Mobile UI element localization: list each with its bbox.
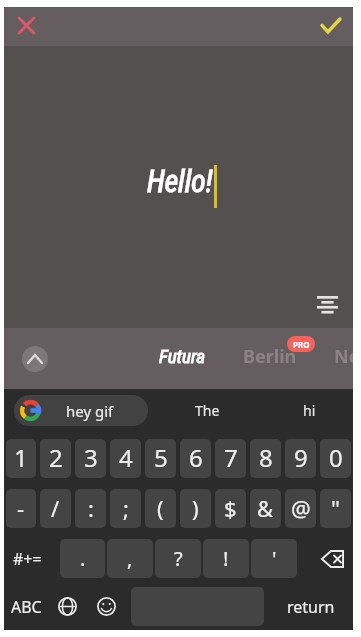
button[interactable]: Backspace — [298, 539, 353, 578]
staticText: ) — [192, 493, 199, 523]
button[interactable]: & — [250, 489, 281, 528]
button[interactable]: ' — [251, 539, 297, 578]
button[interactable]: 1 — [6, 439, 36, 478]
button[interactable]: ABC — [4, 587, 49, 626]
staticText: The — [195, 401, 220, 420]
staticText: 3 — [84, 441, 98, 474]
staticText: 6 — [189, 441, 203, 474]
button[interactable]: 0 — [320, 439, 351, 478]
staticText: ( — [157, 493, 164, 523]
staticText: ' — [272, 545, 277, 572]
staticText: . — [80, 545, 86, 572]
button[interactable]: Text alignment — [311, 288, 343, 320]
button[interactable]: 6 — [180, 439, 211, 478]
button[interactable]: 2 — [40, 439, 71, 478]
button[interactable]: Berlin — [243, 344, 297, 369]
button[interactable]: Google — [14, 395, 148, 426]
button[interactable]: - — [6, 489, 36, 528]
button[interactable]: Futura — [159, 345, 205, 367]
staticText: $ — [224, 493, 237, 523]
button[interactable]: 3 — [75, 439, 106, 478]
staticText: : — [88, 493, 94, 523]
button[interactable]: hi — [303, 401, 316, 420]
staticText: 9 — [294, 441, 308, 474]
staticText: " — [331, 493, 340, 523]
staticText: & — [257, 493, 274, 523]
button[interactable]: #+= — [4, 539, 59, 578]
button[interactable]: 7 — [215, 439, 246, 478]
staticText: return — [287, 596, 335, 618]
staticText: 7 — [224, 441, 238, 474]
staticText: hey gif — [66, 401, 114, 421]
button[interactable]: . — [60, 539, 105, 578]
button[interactable]: Emoji — [85, 587, 127, 626]
staticText: 8 — [259, 441, 273, 474]
button[interactable]: @ — [285, 489, 316, 528]
button[interactable]: 4 — [110, 439, 141, 478]
button[interactable]: Close — [8, 7, 44, 43]
button[interactable]: ! — [203, 539, 249, 578]
staticText: ? — [174, 545, 183, 572]
button[interactable]: 8 — [250, 439, 281, 478]
staticText: ABC — [11, 596, 42, 618]
button[interactable]: Collapse font list — [22, 346, 48, 372]
staticText: 2 — [49, 441, 63, 474]
staticText: 4 — [119, 441, 133, 474]
staticText: ! — [223, 545, 229, 572]
button[interactable]: ? — [155, 539, 201, 578]
staticText: Hello! — [147, 162, 213, 200]
button[interactable]: 5 — [145, 439, 176, 478]
staticText: 5 — [154, 441, 168, 474]
button[interactable]: , — [107, 539, 153, 578]
staticText: / — [51, 493, 60, 523]
staticText: @ — [291, 493, 311, 523]
button[interactable]: 9 — [285, 439, 316, 478]
button[interactable]: : — [75, 489, 106, 528]
staticText: 1 — [14, 441, 28, 474]
button[interactable]: / — [40, 489, 71, 528]
button[interactable]: Change language — [49, 587, 85, 626]
button[interactable]: The — [195, 401, 220, 420]
button[interactable]: " — [320, 489, 351, 528]
staticText: ; — [123, 493, 129, 523]
staticText: , — [127, 545, 133, 572]
staticText: PRO — [293, 339, 310, 350]
button[interactable]: return — [269, 587, 353, 626]
button[interactable]: Done — [313, 7, 349, 43]
button[interactable]: ( — [145, 489, 176, 528]
other: Google — [20, 400, 41, 421]
button[interactable]: $ — [215, 489, 246, 528]
staticText: #+= — [13, 548, 42, 570]
staticText: hi — [303, 401, 316, 420]
button[interactable]: ) — [180, 489, 211, 528]
staticText: 0 — [329, 441, 343, 474]
button[interactable]: Ne — [334, 344, 353, 369]
staticText: - — [17, 493, 25, 523]
button[interactable]: ; — [110, 489, 141, 528]
